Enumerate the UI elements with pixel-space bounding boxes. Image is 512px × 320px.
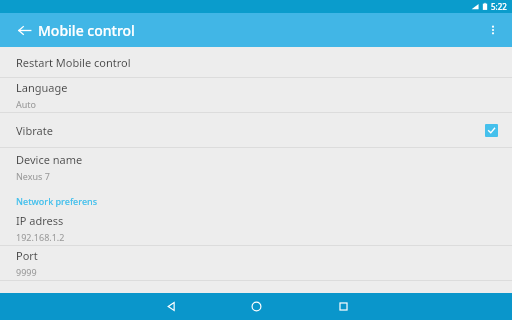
button[interactable]: Device name [0, 148, 512, 186]
staticText: Device name [16, 152, 83, 167]
staticText: Port [16, 248, 38, 263]
staticText: 9999 [16, 266, 37, 278]
button[interactable]: Restart Mobile control [0, 47, 512, 77]
staticText: IP adress [16, 213, 64, 228]
button[interactable]: Back [10, 16, 38, 44]
button[interactable]: More options [479, 16, 507, 44]
staticText: 5:22 [491, 1, 507, 12]
staticText: 192.168.1.2 [16, 231, 65, 243]
button[interactable]: Vibrate checkbox [485, 124, 498, 137]
staticText: Nexus 7 [16, 170, 50, 182]
staticText: Mobile control [38, 21, 135, 40]
button[interactable]: Port [0, 246, 512, 280]
staticText: Vibrate [16, 123, 53, 138]
staticText: Restart Mobile control [16, 55, 131, 70]
staticText: Language [16, 80, 68, 95]
button[interactable]: IP adress [0, 211, 512, 245]
staticText: Auto [16, 98, 37, 110]
button[interactable]: Vibrate [0, 113, 512, 147]
button[interactable]: Back [150, 293, 192, 320]
button[interactable]: Language [0, 78, 512, 112]
button[interactable]: Recent apps [322, 293, 364, 320]
staticText: Network preferens [16, 195, 98, 207]
button[interactable]: Home [235, 293, 277, 320]
